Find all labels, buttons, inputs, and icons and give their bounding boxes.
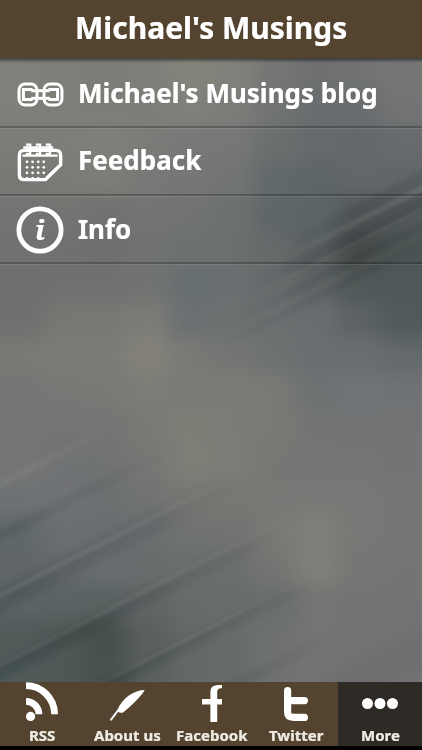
button[interactable]: Facebook xyxy=(170,682,254,746)
staticText: i xyxy=(35,210,45,248)
staticText: Michael's Musings xyxy=(75,7,348,48)
button[interactable]: More xyxy=(338,682,422,746)
staticText: Twitter xyxy=(269,725,324,745)
button[interactable]: Michael's Musings blog xyxy=(0,63,422,126)
staticText: Info xyxy=(78,211,132,246)
button[interactable]: i xyxy=(0,197,422,262)
button[interactable]: Twitter xyxy=(254,682,338,746)
button[interactable]: RSS xyxy=(0,682,85,746)
staticText: Feedback xyxy=(78,142,202,177)
button[interactable]: About us xyxy=(85,682,170,746)
staticText: About us xyxy=(94,725,161,745)
staticText: Facebook xyxy=(176,725,248,745)
staticText: More xyxy=(361,725,400,745)
staticText: Michael's Musings blog xyxy=(78,75,378,110)
button[interactable]: Feedback xyxy=(0,129,422,194)
staticText: RSS xyxy=(29,725,56,745)
